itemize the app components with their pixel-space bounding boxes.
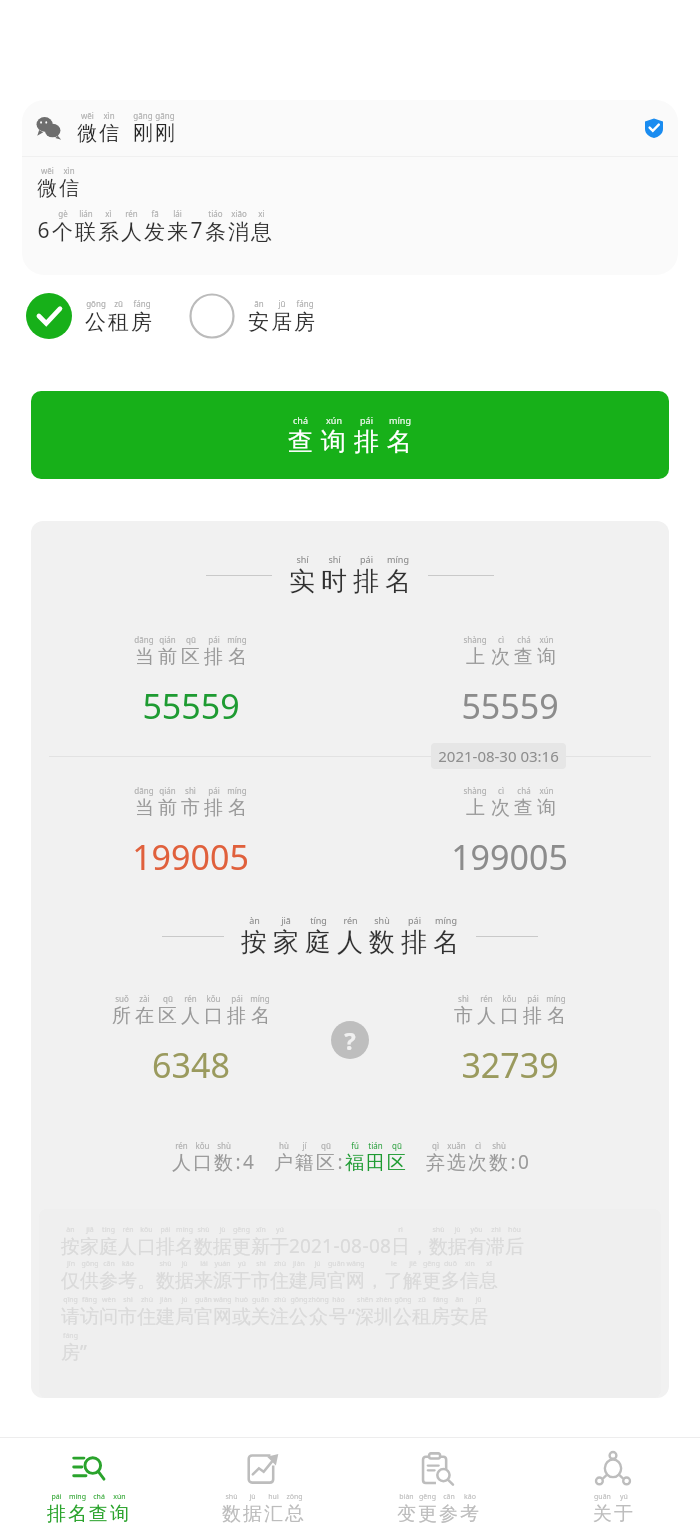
staticText: 名 bbox=[228, 796, 247, 820]
staticText: cān bbox=[103, 1259, 115, 1269]
button[interactable]: ān bbox=[189, 293, 316, 339]
staticText: fáng bbox=[63, 1331, 78, 1341]
staticText: jú bbox=[314, 1259, 321, 1269]
staticText: cì bbox=[475, 1140, 481, 1151]
staticText: “ bbox=[348, 1303, 355, 1329]
staticText: lián bbox=[79, 208, 93, 219]
staticText: 局 bbox=[308, 1269, 327, 1293]
staticText: yú bbox=[620, 1492, 628, 1502]
staticText: 号 bbox=[329, 1305, 348, 1329]
staticText: 仅 bbox=[61, 1269, 80, 1293]
staticText: chá bbox=[293, 414, 308, 426]
button[interactable]: biàn bbox=[350, 1438, 525, 1540]
staticText: shù bbox=[197, 1225, 210, 1235]
staticText: 信 bbox=[460, 1269, 479, 1293]
staticText: 排 bbox=[227, 1004, 246, 1028]
staticText: 更 bbox=[422, 1269, 441, 1293]
button[interactable]: guān bbox=[525, 1438, 700, 1540]
staticText: 后 bbox=[505, 1235, 524, 1259]
button[interactable]: gōng bbox=[26, 293, 153, 339]
staticText: fáng bbox=[433, 1295, 448, 1305]
staticText: rén bbox=[184, 993, 197, 1004]
staticText: jiàn bbox=[293, 1259, 305, 1269]
staticText: zhù bbox=[141, 1295, 153, 1305]
staticText: 市 bbox=[118, 1305, 137, 1329]
staticText: 6348 bbox=[152, 1042, 230, 1088]
staticText: 圳 bbox=[374, 1305, 393, 1329]
staticText: guān bbox=[252, 1295, 269, 1305]
staticText: jù bbox=[181, 1259, 188, 1269]
staticText: 租 bbox=[412, 1305, 431, 1329]
button[interactable]: Help bbox=[331, 1021, 369, 1059]
staticText: 次 bbox=[491, 796, 510, 820]
staticText: hào bbox=[332, 1295, 345, 1305]
staticText: tíng bbox=[310, 914, 327, 926]
staticText: pái bbox=[527, 993, 539, 1004]
staticText: 官 bbox=[194, 1305, 213, 1329]
staticText: 按 bbox=[61, 1235, 80, 1259]
staticText: wēi bbox=[81, 110, 94, 121]
staticText: 6 bbox=[37, 216, 50, 245]
staticText: 2 bbox=[311, 1233, 322, 1259]
staticText: - bbox=[362, 1233, 369, 1259]
staticText: wǎng bbox=[346, 1259, 365, 1269]
staticText: 田 bbox=[366, 1151, 385, 1175]
button[interactable]: chá bbox=[31, 391, 669, 479]
staticText: 租 bbox=[108, 309, 129, 335]
staticText: 区 bbox=[181, 645, 200, 669]
staticText: 0 bbox=[369, 1233, 380, 1259]
staticText: le bbox=[391, 1259, 397, 1269]
staticText: yú bbox=[238, 1259, 246, 1269]
staticText: rì bbox=[398, 1225, 403, 1235]
button[interactable]: wēi bbox=[22, 100, 678, 275]
staticText: 据 bbox=[213, 1235, 232, 1259]
staticText: pái bbox=[360, 553, 373, 565]
staticText: 4 bbox=[243, 1149, 254, 1175]
staticText: 问 bbox=[99, 1305, 118, 1329]
staticText: míng bbox=[69, 1492, 86, 1502]
staticText: zū bbox=[114, 298, 123, 309]
staticText: shì bbox=[256, 1259, 266, 1269]
staticText: àn bbox=[66, 1225, 75, 1235]
button[interactable]: pái bbox=[0, 1438, 175, 1540]
staticText: 条 bbox=[205, 219, 226, 245]
button[interactable]: shù bbox=[175, 1438, 350, 1540]
staticText: shù bbox=[225, 1492, 238, 1502]
staticText: 区 bbox=[158, 1004, 177, 1028]
staticText: 次 bbox=[491, 645, 510, 669]
staticText: 参 bbox=[99, 1269, 118, 1293]
staticText: gōng bbox=[86, 298, 106, 309]
staticText: xīn bbox=[256, 1225, 266, 1235]
staticText: zhì bbox=[491, 1225, 501, 1235]
staticText: zhù bbox=[274, 1259, 286, 1269]
staticText: : bbox=[235, 1149, 241, 1175]
staticText: gè bbox=[58, 208, 68, 219]
staticText: rén bbox=[122, 1225, 134, 1235]
staticText: 息 bbox=[251, 219, 272, 245]
staticText: 市 bbox=[251, 1269, 270, 1293]
staticText: duō bbox=[444, 1259, 457, 1269]
staticText: 2021-08-30 03:16 bbox=[438, 746, 559, 766]
staticText: ? bbox=[344, 1024, 356, 1057]
staticText: 名 bbox=[68, 1502, 87, 1526]
staticText: fā bbox=[151, 208, 159, 219]
staticText: 在 bbox=[135, 1004, 154, 1028]
staticText: rén bbox=[125, 208, 138, 219]
staticText: 查 bbox=[514, 645, 533, 669]
staticText: 建 bbox=[156, 1305, 175, 1329]
staticText: 名 bbox=[547, 1004, 566, 1028]
staticText: kǒu bbox=[140, 1225, 153, 1235]
staticText: zài bbox=[139, 993, 150, 1004]
staticText: 住 bbox=[270, 1269, 289, 1293]
staticText: 询 bbox=[537, 645, 556, 669]
staticText: 口 bbox=[204, 1004, 223, 1028]
staticText: 网 bbox=[346, 1269, 365, 1293]
staticText: 于 bbox=[614, 1502, 633, 1526]
staticText: qǐng bbox=[63, 1295, 78, 1305]
staticText: shàng bbox=[463, 634, 487, 645]
staticText: chá bbox=[93, 1492, 105, 1502]
staticText: gōng bbox=[81, 1259, 99, 1269]
staticText: qū bbox=[163, 993, 173, 1004]
staticText: cān bbox=[443, 1492, 455, 1502]
